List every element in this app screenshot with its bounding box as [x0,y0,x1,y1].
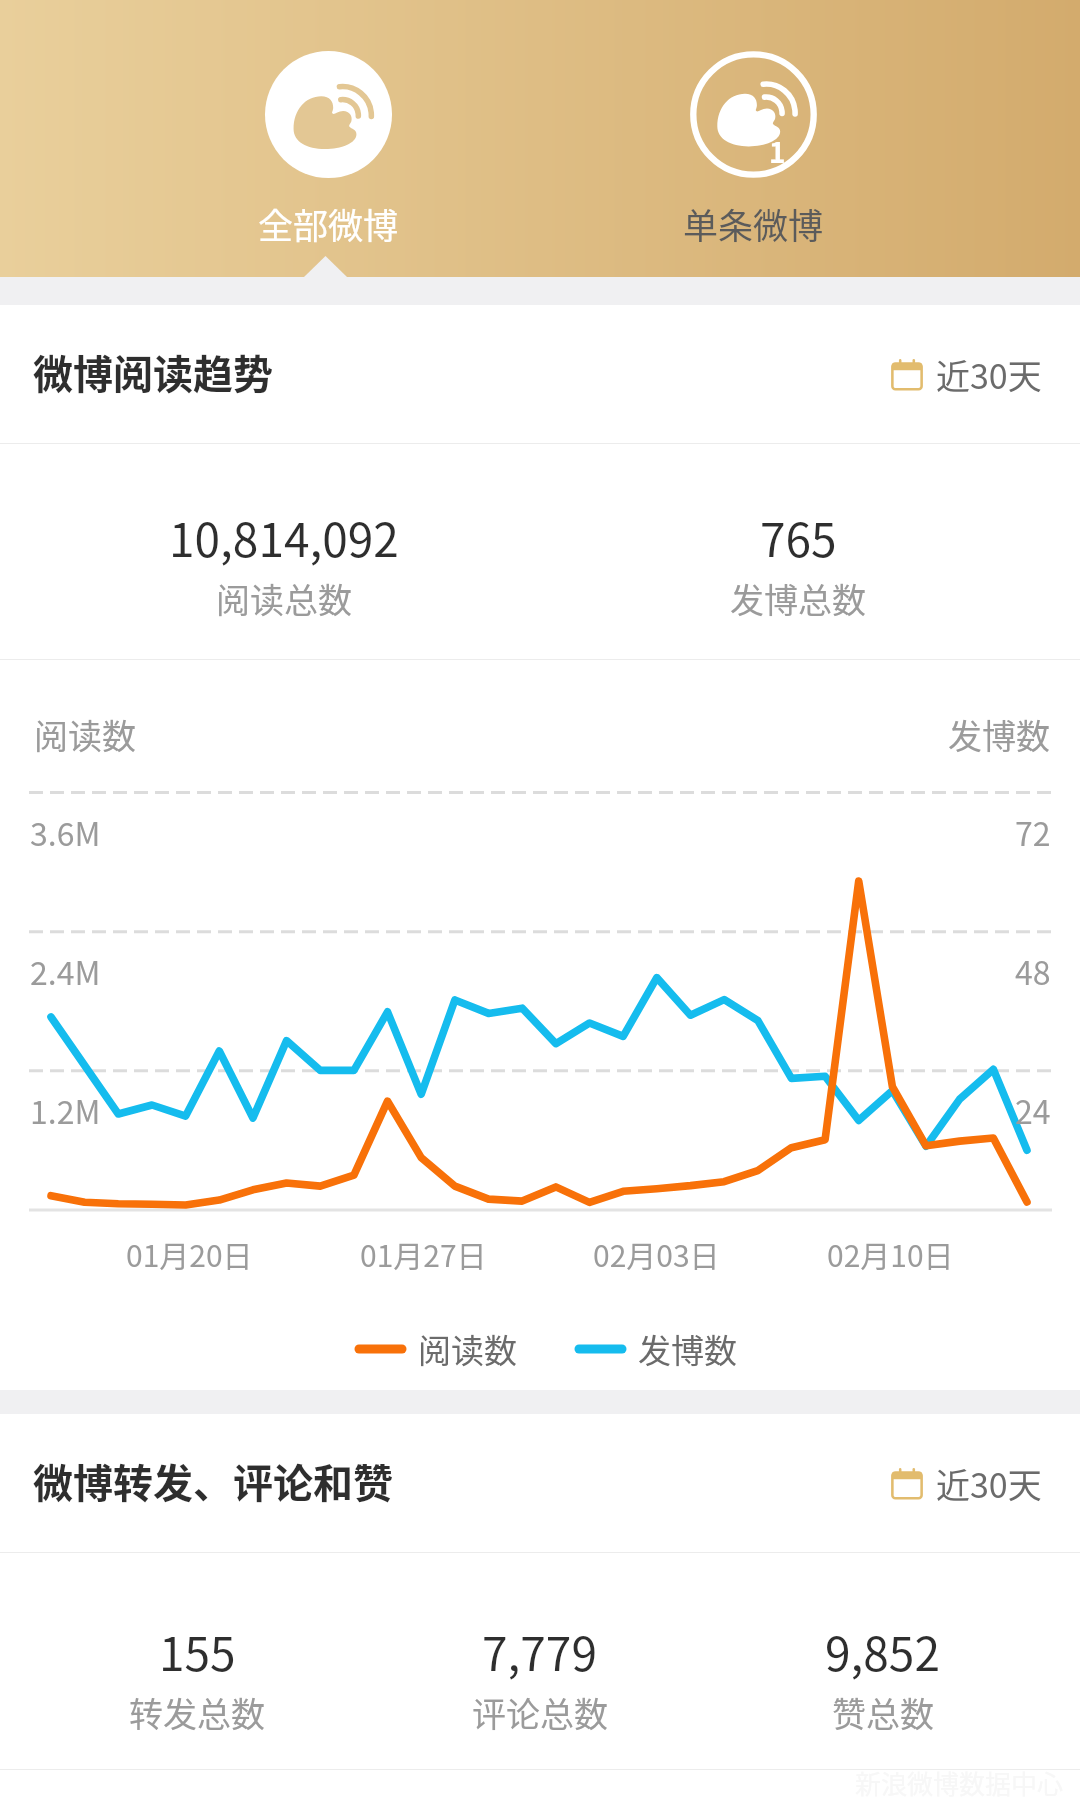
button[interactable]: 155 [26,1618,368,1737]
staticText: 新浪微博数据中心 [855,1764,1064,1799]
staticText: 微博阅读趋势 [33,343,273,401]
staticText: 全部微博 [258,198,399,249]
staticText: 单条微博 [683,198,824,249]
other: Date range [890,358,924,392]
button[interactable]: 765 [541,504,1055,623]
button[interactable]: 9,852 [711,1618,1054,1737]
button[interactable]: 10,814,092 [27,504,541,623]
staticText: 发博数 [638,1325,737,1373]
staticText: 02月03日 [593,1232,720,1275]
staticText: 转发总数 [129,1688,265,1737]
staticText: 赞总数 [832,1688,934,1737]
staticText: 3.6M [30,809,101,855]
staticText: 近30天 [936,350,1042,399]
staticText: 发博总数 [730,574,866,623]
staticText: 72 [1015,809,1051,855]
button[interactable]: 单条微博 [623,0,883,277]
staticText: 阅读数 [34,710,136,759]
staticText: 02月10日 [827,1232,954,1275]
button[interactable]: 7,779 [368,1618,711,1737]
button[interactable]: Date range [886,340,1046,409]
staticText: 微博转发、评论和赞 [33,1452,393,1510]
staticText: 48 [1015,948,1051,994]
staticText: 01月27日 [360,1232,487,1275]
staticText: 1 [769,131,786,172]
staticText: 发博数 [948,710,1050,759]
staticText: 阅读总数 [216,574,352,623]
staticText: 01月20日 [126,1232,253,1275]
other: Date range [890,1467,924,1501]
staticText: 2.4M [30,948,101,994]
staticText: 10,814,092 [169,504,399,571]
button[interactable]: 全部微博 [198,0,458,277]
button[interactable]: Date range [886,1449,1046,1518]
staticText: 评论总数 [472,1688,608,1737]
staticText: 765 [760,504,837,571]
staticText: 阅读数 [418,1325,517,1373]
staticText: 近30天 [936,1459,1042,1508]
other: 全部微博 [265,51,392,178]
other: 单条微博 [690,51,817,178]
staticText: 1.2M [30,1087,101,1133]
staticText: 9,852 [825,1618,940,1685]
staticText: 7,779 [482,1618,597,1685]
staticText: 155 [159,1618,236,1685]
staticText: 24 [1015,1087,1051,1133]
